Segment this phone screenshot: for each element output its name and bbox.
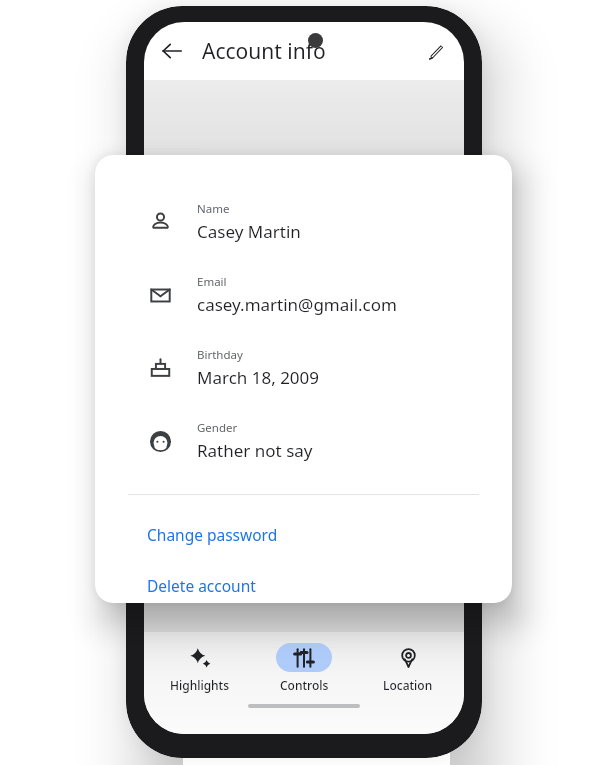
staticText: Gender — [197, 420, 238, 436]
button[interactable]: Gender — [95, 420, 512, 462]
button[interactable]: Change password — [95, 522, 512, 547]
staticText: Highlights — [170, 677, 230, 693]
button[interactable]: Email — [95, 274, 512, 316]
button[interactable]: Back — [150, 29, 194, 73]
button[interactable]: Location — [360, 641, 456, 695]
staticText: Name — [197, 201, 230, 217]
button[interactable]: Highlights — [152, 641, 248, 695]
staticText: Delete account — [147, 575, 256, 596]
button[interactable]: Birthday — [95, 347, 512, 389]
button[interactable]: Name — [95, 201, 512, 243]
button[interactable]: Edit — [414, 29, 458, 73]
staticText: Email — [197, 274, 227, 290]
button[interactable]: Controls — [256, 641, 352, 695]
staticText: casey.martin@gmail.com — [197, 293, 397, 316]
staticText: Change password — [147, 524, 278, 545]
staticText: Birthday — [197, 347, 243, 363]
staticText: Controls — [280, 677, 329, 693]
staticText: Location — [383, 677, 433, 693]
button[interactable]: Delete account — [95, 573, 512, 598]
staticText: Casey Martin — [197, 220, 301, 243]
staticText: Account info — [202, 37, 326, 66]
staticText: Rather not say — [197, 439, 313, 462]
staticText: March 18, 2009 — [197, 366, 320, 389]
